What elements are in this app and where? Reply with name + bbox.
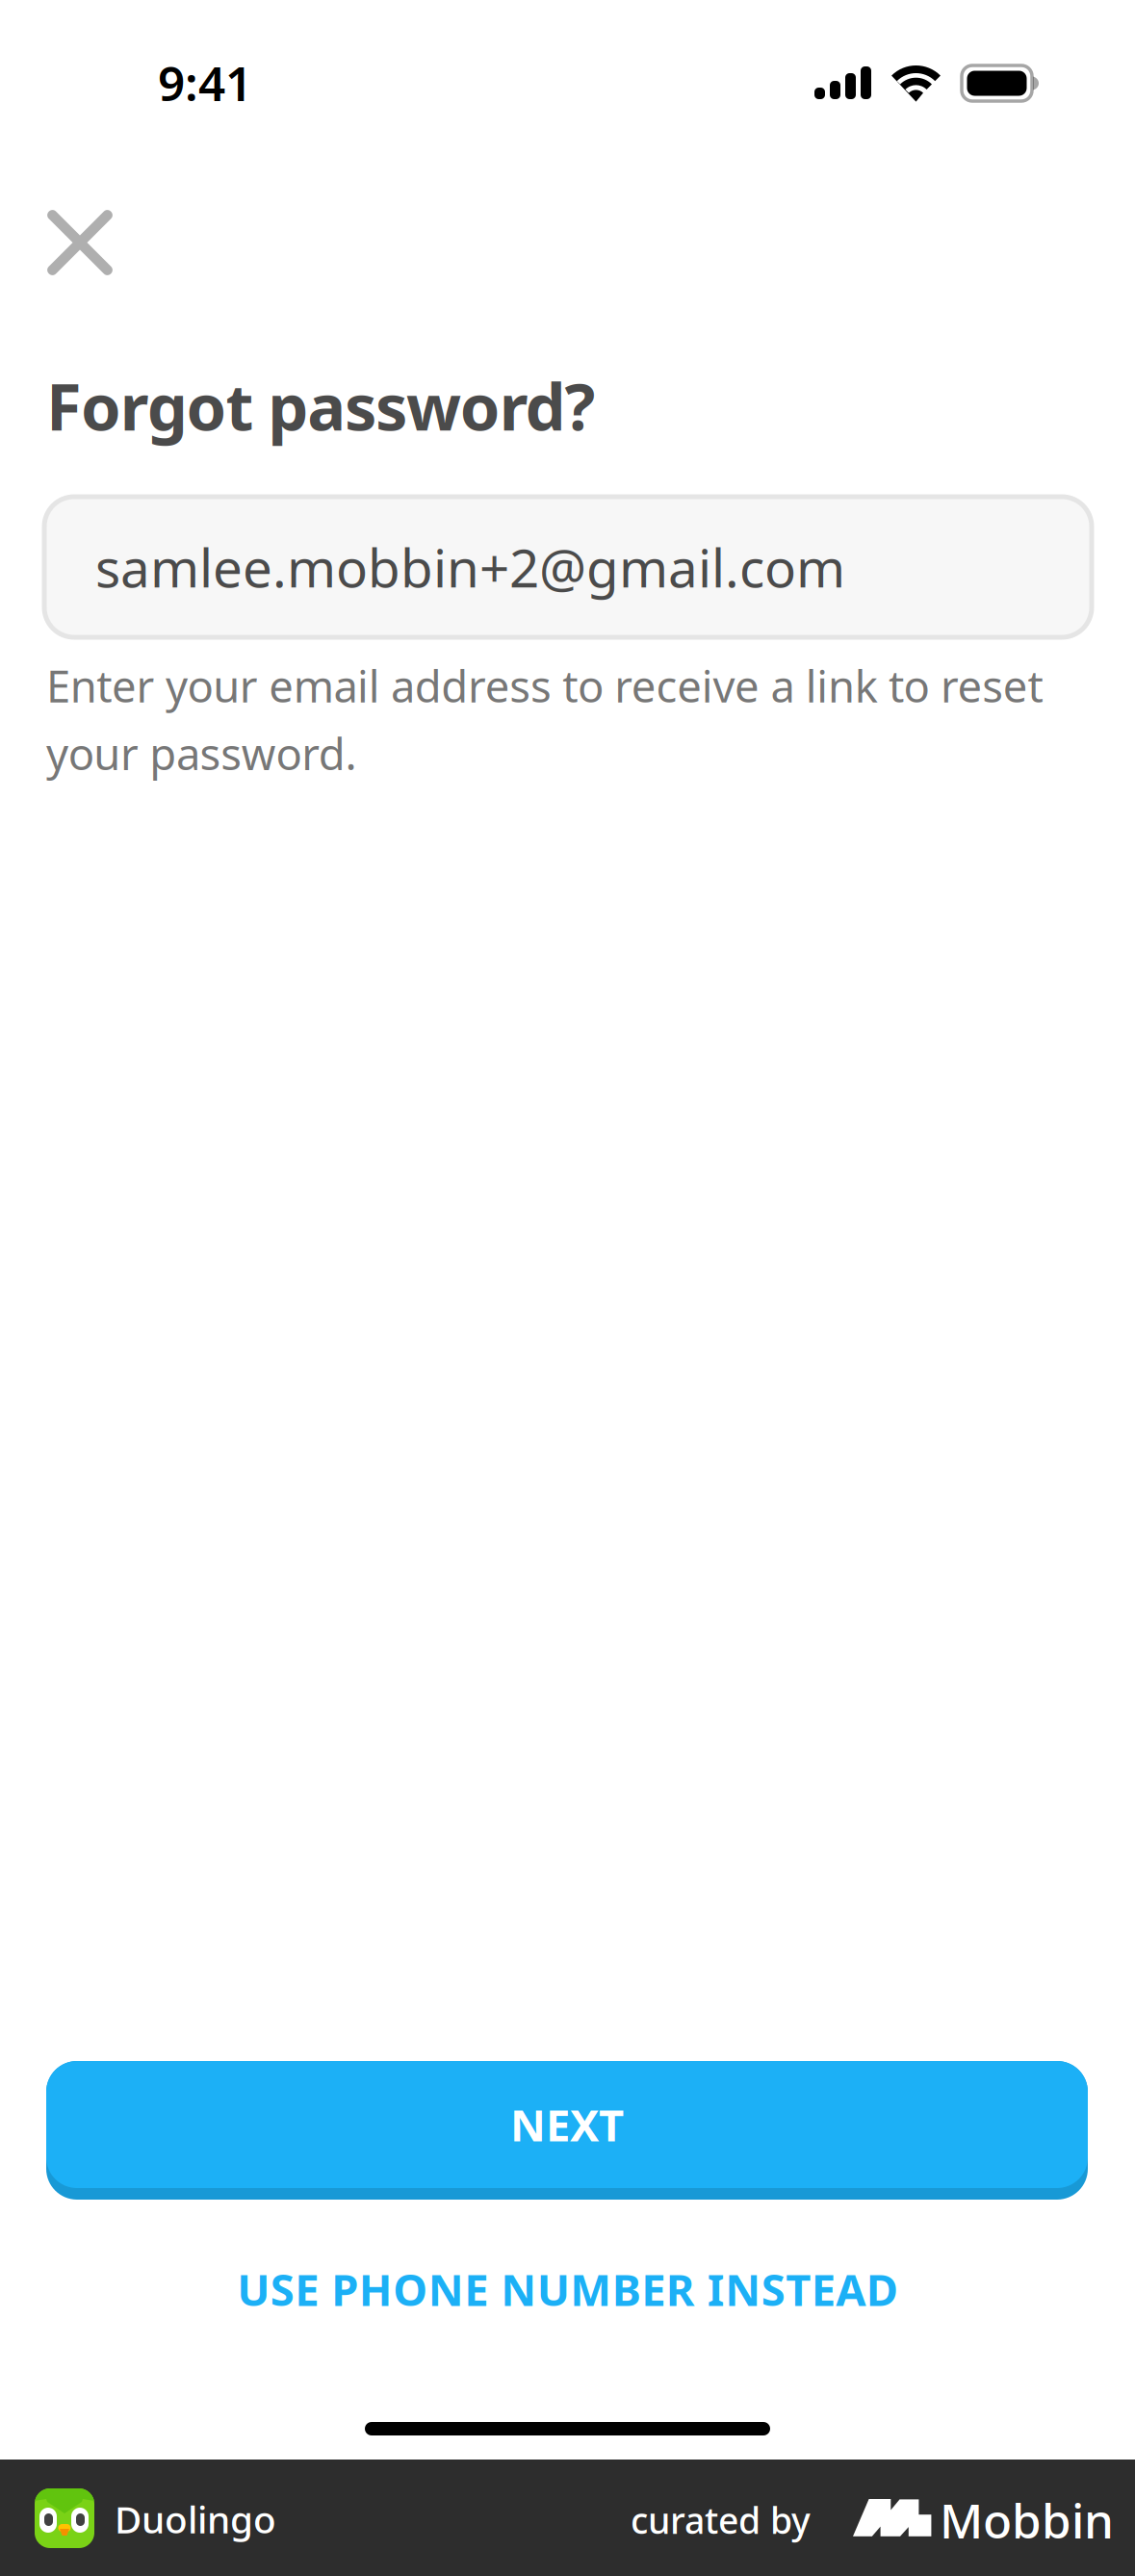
staticText: Duolingo (115, 2494, 276, 2544)
staticText: curated by (631, 2496, 811, 2544)
button[interactable]: NEXT (46, 2061, 1088, 2200)
staticText: Mobbin (940, 2488, 1114, 2551)
staticText: USE PHONE NUMBER INSTEAD (237, 2260, 898, 2318)
staticText: Enter your email address to receive a li… (46, 657, 1043, 782)
staticText: samlee.mobbin+2@gmail.com (95, 532, 845, 602)
staticText: 9:41 (158, 51, 252, 114)
button[interactable]: USE PHONE NUMBER INSTEAD (0, 2236, 1135, 2342)
staticText: NEXT (510, 2096, 624, 2154)
button[interactable]: samlee.mobbin+2@gmail.com (44, 497, 1092, 637)
button[interactable]: Close (32, 194, 128, 291)
staticText: Forgot password? (46, 363, 595, 448)
